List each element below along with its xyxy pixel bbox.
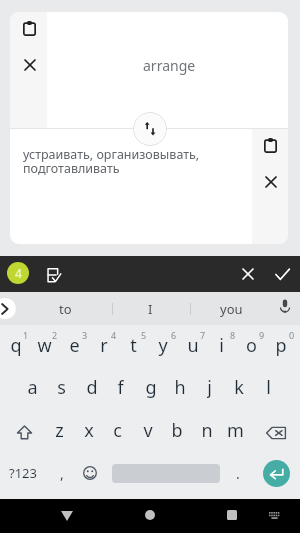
staticText: 4: [15, 265, 22, 281]
staticText: 3: [82, 329, 88, 341]
button[interactable]: Paste: [16, 15, 43, 42]
button[interactable]: Shift: [6, 416, 42, 448]
staticText: i: [219, 333, 224, 357]
staticText: y: [158, 333, 168, 357]
staticText: 4: [111, 329, 117, 341]
staticText: v: [143, 418, 153, 442]
button[interactable]: m: [221, 418, 250, 442]
staticText: to: [59, 300, 72, 318]
staticText: I: [148, 300, 153, 318]
staticText: f: [117, 375, 124, 399]
button[interactable]: p: [266, 333, 295, 357]
staticText: o: [246, 333, 257, 357]
button[interactable]: Home: [135, 500, 165, 530]
staticText: 9: [259, 329, 265, 341]
button[interactable]: k: [224, 375, 253, 399]
button[interactable]: Recent apps: [217, 500, 247, 530]
button[interactable]: f: [106, 375, 135, 399]
button[interactable]: Confirm: [268, 260, 296, 288]
button[interactable]: Cancel: [234, 260, 262, 288]
button[interactable]: u: [178, 333, 207, 357]
staticText: 0: [289, 329, 295, 341]
staticText: c: [113, 418, 122, 442]
staticText: s: [57, 375, 66, 399]
button[interactable]: More suggestions: [0, 298, 16, 319]
staticText: e: [69, 333, 80, 357]
button[interactable]: Back: [52, 500, 82, 532]
staticText: n: [201, 418, 213, 442]
staticText: .: [236, 464, 240, 483]
staticText: m: [227, 418, 244, 442]
staticText: arrange: [143, 56, 196, 75]
staticText: устраивать, организовывать, подготавлива…: [23, 146, 243, 177]
staticText: 1: [23, 329, 29, 341]
staticText: you: [220, 300, 243, 318]
button[interactable]: ?123: [3, 457, 43, 489]
staticText: u: [187, 333, 199, 357]
button[interactable]: b: [162, 418, 191, 442]
staticText: h: [174, 375, 186, 399]
staticText: q: [10, 333, 22, 357]
button[interactable]: w: [30, 333, 59, 357]
button[interactable]: a: [18, 375, 47, 399]
staticText: x: [84, 418, 94, 442]
staticText: t: [130, 333, 137, 357]
button[interactable]: Close: [257, 168, 284, 195]
staticText: l: [266, 375, 271, 399]
button[interactable]: q: [1, 333, 30, 357]
staticText: 2: [52, 329, 58, 341]
button[interactable]: e: [60, 333, 89, 357]
button[interactable]: t: [119, 333, 148, 357]
button[interactable]: Clear source text: [16, 51, 43, 78]
button[interactable]: Voice input: [271, 292, 299, 320]
button[interactable]: .: [224, 457, 252, 489]
staticText: p: [275, 333, 287, 357]
button[interactable]: d: [77, 375, 106, 399]
button[interactable]: x: [74, 418, 103, 442]
staticText: j: [207, 375, 212, 399]
staticText: a: [27, 375, 38, 399]
button[interactable]: Saved phrases: [39, 260, 67, 288]
button[interactable]: g: [136, 375, 165, 399]
button[interactable]: Swap languages: [133, 112, 167, 146]
staticText: z: [55, 418, 64, 442]
button[interactable]: c: [103, 418, 132, 442]
button[interactable]: Enter: [263, 460, 290, 487]
staticText: 7: [200, 329, 206, 341]
button[interactable]: y: [148, 333, 177, 357]
button[interactable]: to: [37, 292, 93, 325]
button[interactable]: z: [45, 418, 74, 442]
staticText: b: [171, 418, 183, 442]
button[interactable]: i: [207, 333, 236, 357]
staticText: d: [86, 375, 98, 399]
staticText: w: [37, 333, 52, 357]
button[interactable]: j: [195, 375, 224, 399]
button[interactable]: Emoji: [76, 457, 104, 489]
staticText: r: [100, 333, 108, 357]
button[interactable]: you: [203, 292, 259, 325]
button[interactable]: o: [237, 333, 266, 357]
button[interactable]: h: [165, 375, 194, 399]
button[interactable]: I: [122, 292, 178, 325]
staticText: ,: [60, 464, 64, 483]
button[interactable]: r: [89, 333, 118, 357]
staticText: ?123: [9, 464, 37, 482]
button[interactable]: s: [47, 375, 76, 399]
button[interactable]: v: [133, 418, 162, 442]
staticText: 5: [141, 329, 147, 341]
staticText: k: [234, 375, 244, 399]
staticText: 6: [171, 329, 177, 341]
button[interactable]: n: [192, 418, 221, 442]
staticText: 8: [230, 329, 236, 341]
button[interactable]: Backspace: [258, 416, 294, 449]
button[interactable]: Hide keyboard: [261, 500, 287, 530]
button[interactable]: 4: [7, 262, 29, 284]
button[interactable]: l: [254, 375, 283, 399]
button[interactable]: Copy translation: [257, 132, 284, 159]
staticText: g: [145, 375, 157, 399]
button[interactable]: ,: [48, 457, 76, 489]
